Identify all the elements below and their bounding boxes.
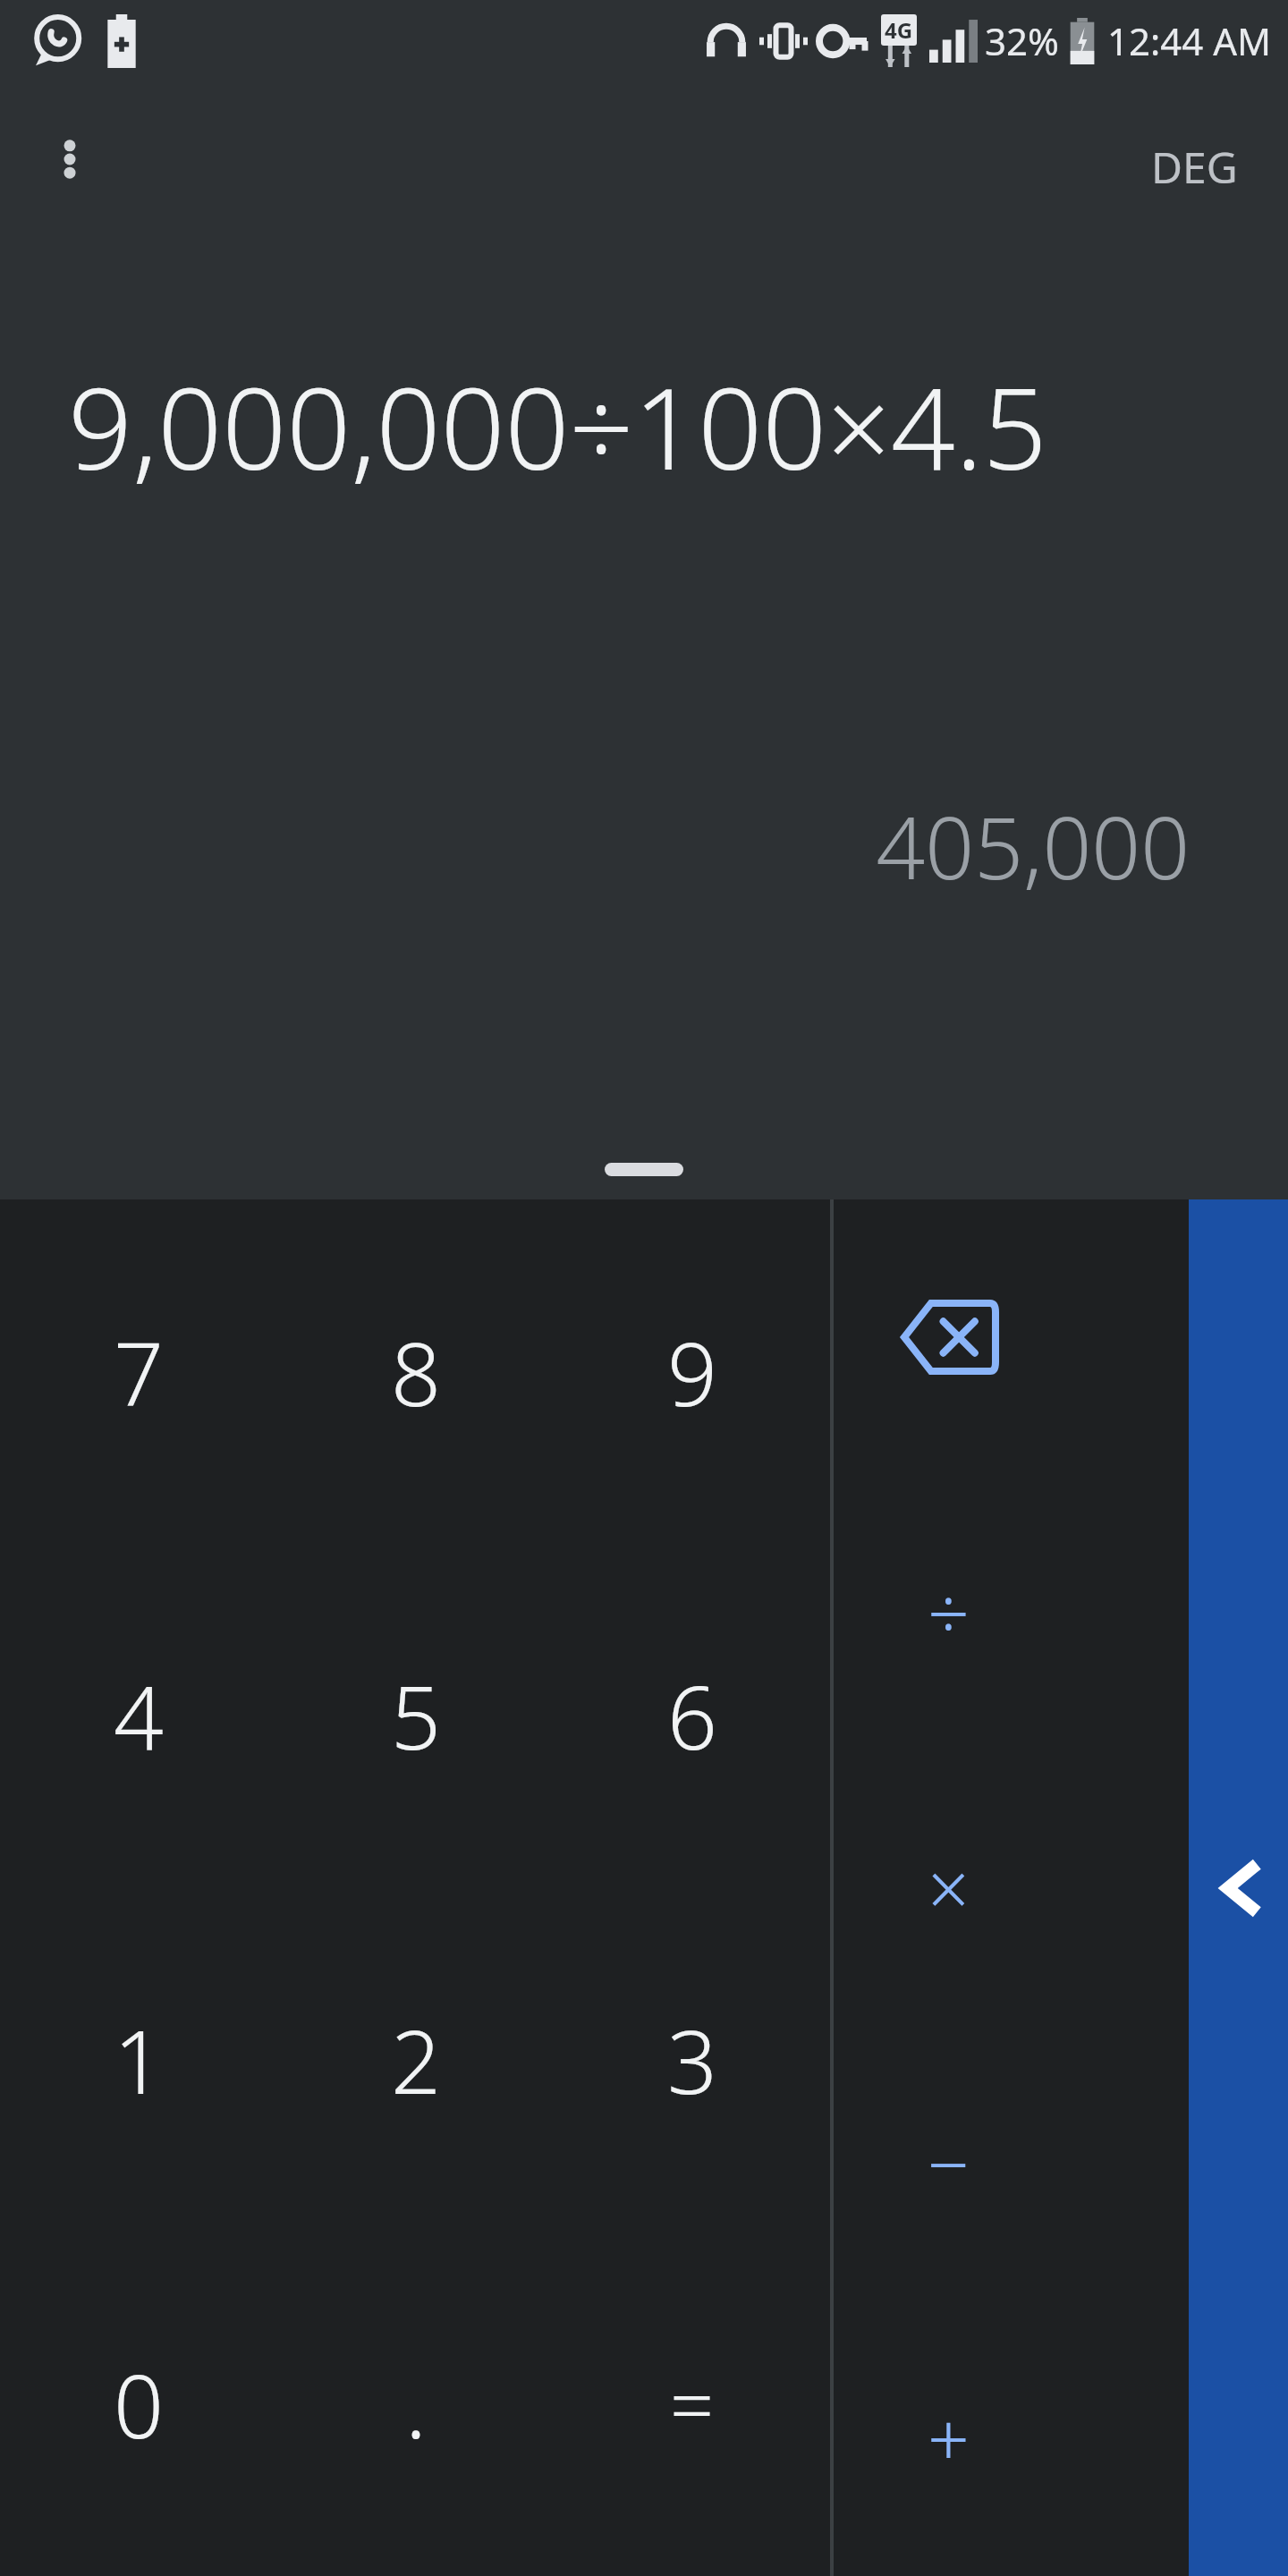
staticText: × (928, 1837, 970, 1937)
button[interactable]: Delete (834, 1199, 1189, 1474)
button[interactable]: 5 (277, 1543, 554, 1887)
button[interactable]: Multiply (834, 1750, 1189, 2025)
button[interactable]: Expand pad (605, 1163, 683, 1176)
button[interactable]: 7 (0, 1199, 277, 1543)
staticText: = (670, 2351, 715, 2456)
staticText: − (928, 2113, 970, 2213)
staticText: . (405, 2344, 427, 2463)
button[interactable]: 9 (554, 1199, 830, 1543)
button[interactable]: 1 (0, 1887, 277, 2232)
staticText: 1 (114, 2000, 164, 2119)
staticText: DEG (1151, 138, 1238, 196)
button[interactable]: 0 (0, 2232, 277, 2576)
button[interactable]: Divide (834, 1474, 1189, 1750)
staticText: 3 (667, 2000, 717, 2119)
staticText: 5 (391, 1656, 441, 1775)
button[interactable]: More options (36, 125, 104, 193)
button[interactable]: Open history (1189, 1199, 1288, 2576)
button[interactable]: = (554, 2232, 830, 2576)
staticText: 8 (391, 1312, 441, 1431)
button[interactable]: 6 (554, 1543, 830, 1887)
button[interactable]: . (277, 2232, 554, 2576)
button[interactable]: 4 (0, 1543, 277, 1887)
staticText: 32% (985, 15, 1059, 66)
button[interactable]: 8 (277, 1199, 554, 1543)
button[interactable]: 2 (277, 1887, 554, 2232)
button[interactable]: DEG (1139, 125, 1250, 208)
staticText: 12:44 AM (1107, 15, 1272, 66)
staticText: 9 (667, 1312, 717, 1431)
staticText: + (928, 2388, 970, 2488)
staticText: 7 (114, 1312, 164, 1431)
staticText: 0 (114, 2344, 164, 2463)
button[interactable]: 3 (554, 1887, 830, 2232)
button[interactable]: Minus (834, 2025, 1189, 2301)
staticText: 4G (885, 15, 913, 45)
staticText: 4 (114, 1656, 164, 1775)
staticText: 6 (667, 1656, 717, 1775)
staticText: 405,000 (0, 787, 1190, 904)
staticText: 9,000,000÷100×4.5 (68, 349, 1047, 503)
button[interactable]: Plus (834, 2301, 1189, 2576)
staticText: 2 (391, 2000, 441, 2119)
staticText: ÷ (928, 1562, 970, 1662)
